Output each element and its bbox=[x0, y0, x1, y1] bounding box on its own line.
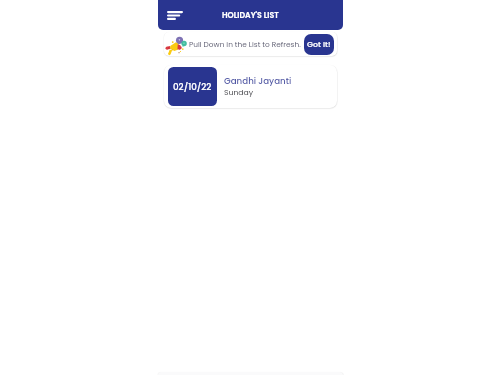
staticText: Pull Down in the List to Refresh. bbox=[189, 39, 301, 49]
staticText: HOLIDAY'S LIST bbox=[222, 10, 279, 21]
staticText: Gandhi Jayanti bbox=[224, 75, 292, 87]
staticText: Got it! bbox=[307, 39, 331, 50]
button[interactable]: Got it! bbox=[304, 34, 334, 55]
staticText: 02/10/22 bbox=[173, 81, 212, 93]
button[interactable]: Open navigation menu bbox=[161, 4, 185, 26]
button[interactable]: 02/10/22 bbox=[164, 65, 337, 108]
staticText: Sunday bbox=[224, 87, 254, 98]
